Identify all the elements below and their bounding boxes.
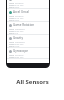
staticText: 1.0 xyxy=(15,32,19,34)
staticText: Game Rotation xyxy=(13,23,35,27)
button[interactable]: Gravity xyxy=(7,35,49,48)
staticText: Accel Uncal xyxy=(13,10,29,14)
staticText: 0.65 mA xyxy=(15,56,24,58)
staticText: All Sensors xyxy=(16,78,49,86)
staticText: 0.15 mA xyxy=(15,4,24,6)
staticText: Power xyxy=(9,4,15,6)
staticText: Range xyxy=(9,19,15,21)
staticText: Gyroscope xyxy=(13,49,28,53)
staticText: Range xyxy=(9,6,15,8)
staticText: Power xyxy=(9,43,15,45)
staticText: STMicro xyxy=(15,54,24,56)
staticText: Vendor xyxy=(9,41,15,43)
staticText: Power xyxy=(9,30,15,32)
staticText: 0.15 mA xyxy=(15,17,24,19)
staticText: 78.4 xyxy=(15,6,20,8)
button[interactable]: Game Rotation xyxy=(7,22,49,35)
staticText: 78.4 xyxy=(15,19,20,21)
staticText: Vendor xyxy=(9,2,15,4)
staticText: STMicro xyxy=(15,2,24,4)
staticText: 0.50 mA xyxy=(15,43,24,45)
staticText: Power xyxy=(9,17,15,19)
button[interactable]: Accel Uncal xyxy=(7,9,49,22)
button[interactable]: Gyroscope xyxy=(7,48,49,59)
staticText: Range xyxy=(9,45,15,47)
staticText: 19.6 xyxy=(15,45,20,47)
staticText: Vendor xyxy=(9,28,15,30)
staticText: Samsung xyxy=(15,28,25,30)
staticText: Vendor xyxy=(9,54,15,56)
staticText: 0.50 mA xyxy=(15,30,24,32)
staticText: Power xyxy=(9,56,15,58)
staticText: Range xyxy=(9,32,15,34)
button[interactable]: Accelerometer xyxy=(7,0,49,9)
staticText: STMicro xyxy=(15,15,24,17)
staticText: Gravity xyxy=(13,36,23,40)
staticText: Vendor xyxy=(9,15,15,17)
staticText: Samsung xyxy=(15,41,25,43)
